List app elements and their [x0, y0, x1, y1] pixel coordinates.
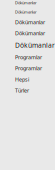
staticText: Hepsi — [15, 76, 29, 83]
staticText: Türler — [15, 87, 29, 94]
staticText: Programlar — [15, 65, 42, 72]
staticText: Dökümanlar — [15, 41, 55, 50]
staticText: Dökümanlar — [15, 30, 45, 37]
staticText: Dökümanlar — [15, 0, 37, 5]
staticText: Programlar — [15, 54, 42, 61]
staticText: Dökümanlar — [15, 9, 37, 15]
staticText: Dökümanlar — [15, 19, 45, 26]
